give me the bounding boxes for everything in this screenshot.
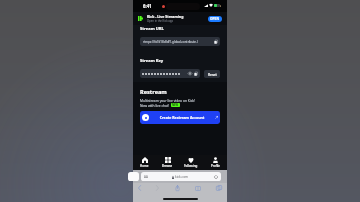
other: Tabs [216, 185, 222, 191]
staticText: NEW [172, 103, 179, 107]
staticText: Stream Key [140, 58, 164, 64]
staticText: Restream [140, 88, 167, 96]
other: Copy [214, 40, 218, 44]
staticText: rtmps://fa7d18c8df1.global-contribute.l [143, 40, 214, 44]
staticText: Now with live chat! [140, 103, 170, 107]
other: Copy [194, 72, 198, 76]
staticText: Stream URL [140, 26, 164, 32]
staticText: Multistream your live video on Kick! [140, 98, 195, 102]
button[interactable]: OPEN [208, 16, 222, 22]
staticText: 6:41 [143, 3, 152, 9]
staticText: Create Restream Account [149, 115, 215, 120]
staticText: Browse [162, 164, 173, 168]
staticText: Open in the Kick app [147, 19, 174, 23]
staticText: AA [144, 175, 148, 179]
other: Bookmarks [195, 186, 201, 191]
other: Show key [188, 72, 192, 75]
staticText: kick.com [175, 175, 189, 179]
button[interactable]: Following [179, 155, 203, 170]
other: Back [138, 185, 141, 191]
button[interactable]: Profile [203, 155, 227, 170]
other: Reload [214, 175, 218, 179]
staticText: Kick - Live Streaming [147, 14, 184, 19]
staticText: OPEN [210, 17, 220, 21]
button[interactable]: AA [141, 172, 221, 181]
button[interactable]: Show key [140, 69, 200, 78]
button[interactable]: rtmps://fa7d18c8df1.global-contribute.l [140, 37, 220, 46]
button[interactable]: Browse [156, 155, 179, 170]
staticText: Home [140, 164, 149, 168]
button[interactable]: Create Restream Account [140, 111, 220, 124]
other: Share [175, 185, 180, 191]
other: Forward [156, 185, 159, 191]
other: Open external link [215, 116, 218, 119]
staticText: Reset [208, 72, 217, 76]
staticText: Profile [211, 164, 220, 168]
button[interactable]: Reset [204, 70, 220, 78]
button[interactable]: Home [133, 155, 156, 170]
staticText: Following [184, 164, 198, 168]
